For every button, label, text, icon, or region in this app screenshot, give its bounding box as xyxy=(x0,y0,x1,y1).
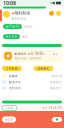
staticText: 领取 xyxy=(22,35,28,38)
staticText: 新人专享 xyxy=(5,35,17,38)
staticText: 去结算 xyxy=(4,118,13,121)
staticText: 优惠券 xyxy=(9,74,18,78)
staticText: 去凑单 xyxy=(24,25,33,28)
staticText: 新鲜直达 xyxy=(15,17,27,20)
staticText: 10:08 xyxy=(3,0,16,7)
staticText: 支付方式 xyxy=(9,86,21,90)
staticText: 合计 ¥128.00 xyxy=(42,106,62,110)
staticText: 配送方式 xyxy=(9,80,21,84)
staticText: 去结算 xyxy=(5,106,14,110)
staticText: 配送时间 今日 18:00 前送达 xyxy=(14,52,46,55)
staticText: 顺丰冷链 · 全程保鲜 xyxy=(14,56,41,60)
staticText: 3张可用 xyxy=(51,74,62,78)
staticText: 立即抢购 xyxy=(6,67,18,70)
staticText: 标准配送 xyxy=(50,80,62,84)
staticText: 微信支付 xyxy=(50,86,62,90)
staticText: 满99减30 xyxy=(5,25,19,28)
staticText: 修改 xyxy=(52,52,58,56)
staticText: 加购物车 xyxy=(37,67,49,70)
staticText: 限时秒杀 xyxy=(15,11,31,16)
